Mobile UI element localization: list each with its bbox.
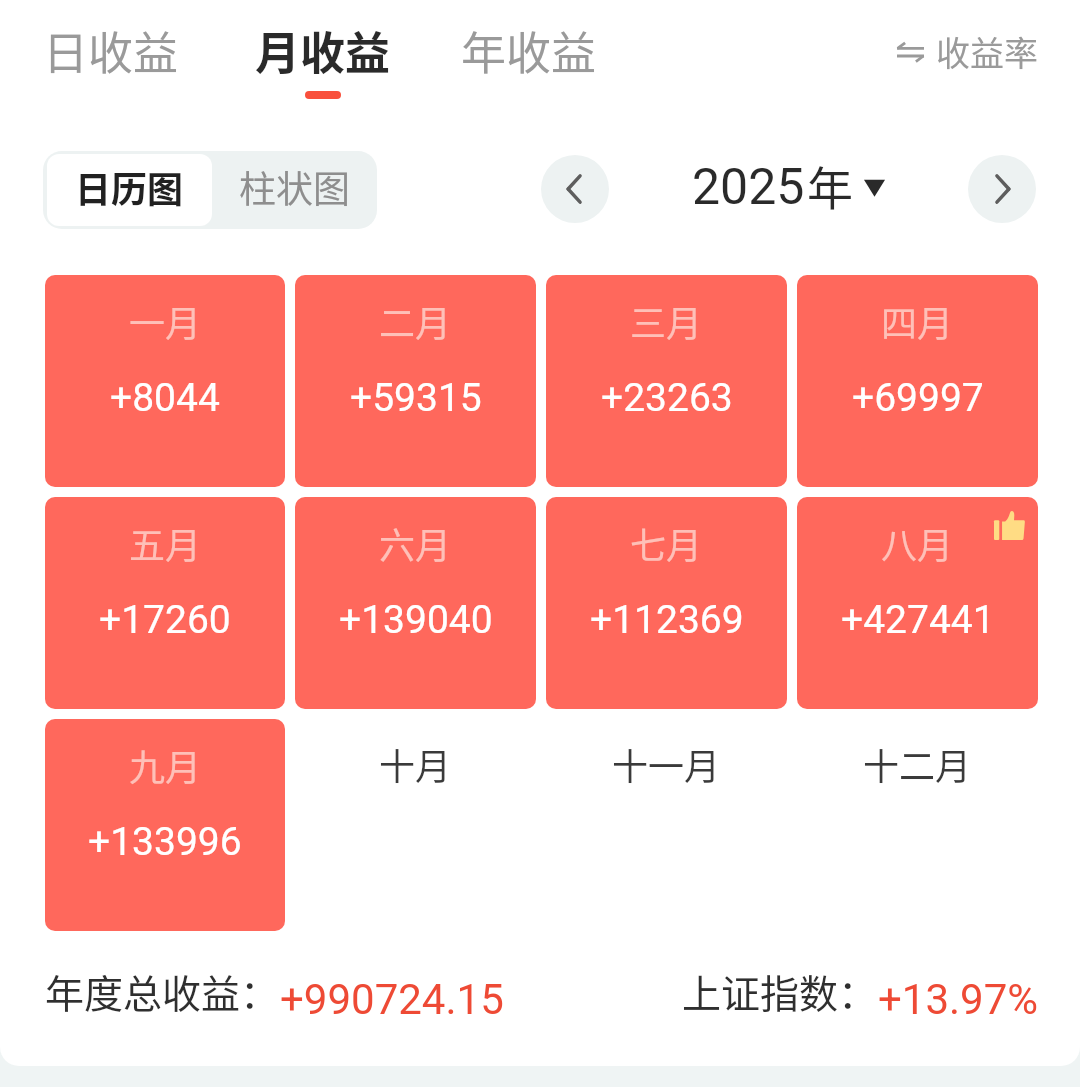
button[interactable]: 五月 bbox=[45, 497, 285, 709]
button[interactable]: 一月 bbox=[45, 275, 285, 487]
staticText: +112369 bbox=[590, 597, 744, 643]
staticText: 十二月 bbox=[863, 738, 972, 790]
staticText: +133996 bbox=[88, 819, 242, 865]
staticText: +8044 bbox=[110, 375, 220, 421]
staticText: 二月 bbox=[379, 295, 452, 347]
staticText: 五月 bbox=[129, 517, 202, 569]
staticText: 十月 bbox=[379, 738, 452, 790]
button[interactable]: 十二月 bbox=[797, 719, 1038, 931]
button[interactable]: 日收益 bbox=[43, 18, 179, 83]
button[interactable]: 二月 bbox=[295, 275, 536, 487]
button[interactable]: 七月 bbox=[546, 497, 787, 709]
button[interactable]: 三月 bbox=[546, 275, 787, 487]
staticText: 三月 bbox=[630, 295, 703, 347]
staticText: 上证指数： bbox=[682, 963, 878, 1019]
staticText: +59315 bbox=[350, 375, 482, 421]
button[interactable]: 收益率 bbox=[897, 27, 1038, 76]
button[interactable]: 月收益 bbox=[255, 18, 391, 99]
button[interactable]: Previous year bbox=[541, 155, 609, 223]
staticText: 年度总收益： bbox=[45, 963, 280, 1019]
staticText: 月收益 bbox=[255, 18, 391, 83]
staticText: +69997 bbox=[852, 375, 984, 421]
button[interactable]: Next year bbox=[968, 155, 1036, 223]
staticText: +139040 bbox=[339, 597, 493, 643]
button[interactable]: 年收益 bbox=[461, 18, 597, 83]
staticText: 四月 bbox=[881, 295, 954, 347]
button[interactable]: 十月 bbox=[295, 719, 536, 931]
staticText: 八月 bbox=[881, 517, 954, 569]
staticText: +23263 bbox=[601, 375, 733, 421]
staticText: 2025 bbox=[692, 158, 805, 217]
staticText: 一月 bbox=[129, 295, 202, 347]
staticText: 年 bbox=[807, 152, 853, 219]
staticText: 七月 bbox=[630, 517, 703, 569]
button[interactable]: 日历图 bbox=[47, 154, 212, 226]
staticText: 收益率 bbox=[936, 27, 1038, 76]
staticText: 六月 bbox=[379, 517, 452, 569]
staticText: +17260 bbox=[99, 597, 231, 643]
staticText: 九月 bbox=[129, 739, 202, 791]
button[interactable]: 2025 bbox=[692, 151, 885, 218]
button[interactable]: 六月 bbox=[295, 497, 536, 709]
staticText: 日历图 bbox=[75, 161, 184, 213]
button[interactable]: 柱状图 bbox=[212, 154, 377, 226]
staticText: +990724.15 bbox=[280, 975, 504, 1024]
button[interactable]: 十一月 bbox=[546, 719, 787, 931]
button[interactable]: 九月 bbox=[45, 719, 285, 931]
staticText: 年收益 bbox=[461, 18, 597, 83]
button[interactable]: 八月 bbox=[797, 497, 1038, 709]
staticText: +427441 bbox=[841, 597, 995, 643]
staticText: 柱状图 bbox=[239, 160, 350, 214]
button[interactable]: 四月 bbox=[797, 275, 1038, 487]
staticText: 日收益 bbox=[43, 18, 179, 83]
staticText: 十一月 bbox=[612, 738, 721, 790]
staticText: +13.97% bbox=[878, 975, 1039, 1024]
